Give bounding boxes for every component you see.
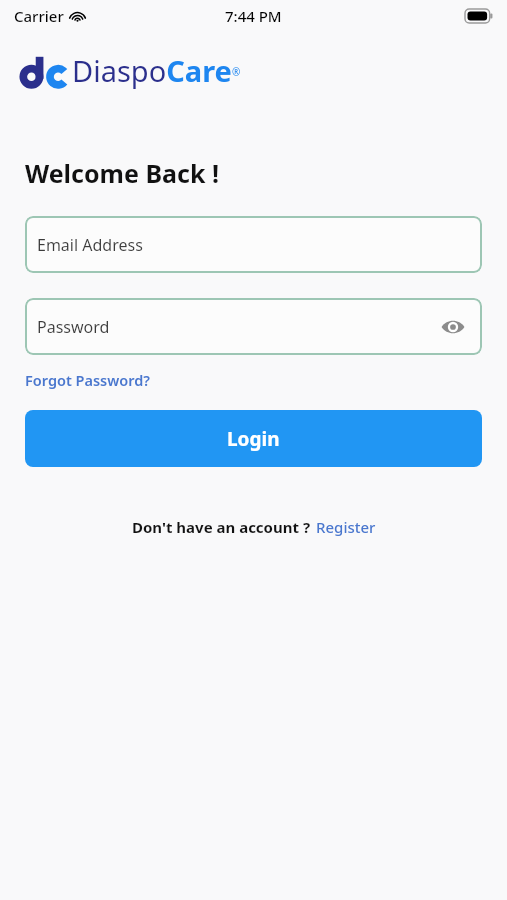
staticText: Email Address	[37, 234, 143, 256]
button[interactable]: Password	[25, 298, 482, 355]
button[interactable]: Forgot Password?	[25, 368, 151, 392]
button[interactable]: Show password	[436, 310, 470, 344]
staticText: Register	[316, 517, 376, 537]
button[interactable]: Login	[25, 410, 482, 467]
staticText: Carrier	[14, 6, 64, 26]
staticText: Login	[227, 426, 280, 452]
staticText: Forgot Password?	[25, 370, 151, 390]
button[interactable]: Register	[316, 515, 376, 539]
staticText: DiaspoCare®	[72, 51, 241, 90]
staticText: Welcome Back !	[25, 156, 219, 190]
staticText: 7:44 PM	[225, 6, 282, 26]
button[interactable]: Email Address	[25, 216, 482, 273]
staticText: Password	[37, 316, 110, 338]
staticText: Don't have an account ?	[132, 517, 311, 537]
